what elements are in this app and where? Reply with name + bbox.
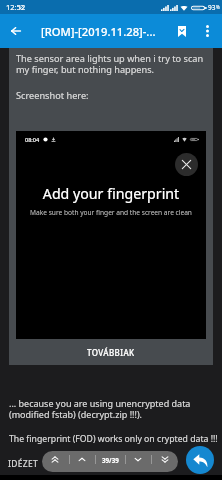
button[interactable]: Bookmark xyxy=(170,14,194,48)
staticText: TOVÁBBIAK xyxy=(87,347,135,358)
staticText: The sensor area lights up when i try to … xyxy=(16,52,206,75)
staticText: Screenshot here: xyxy=(16,89,89,102)
staticText: ... because you are using unencrypted da… xyxy=(9,397,191,421)
staticText: Make sure both your finger and the scree… xyxy=(16,208,206,217)
staticText: Add your fingerprint xyxy=(16,184,206,203)
button[interactable]: Next quote xyxy=(126,451,150,472)
button[interactable]: IDÉZET xyxy=(8,458,39,470)
staticText: 39/39 xyxy=(102,456,119,464)
staticText: The fingerprint (FOD) works only on cryp… xyxy=(9,433,218,445)
button[interactable]: Previous quote xyxy=(70,451,94,472)
button[interactable]: Last quote xyxy=(152,451,178,472)
button[interactable]: Reply xyxy=(186,446,214,474)
staticText: 12:52 xyxy=(6,2,26,12)
button[interactable]: Close xyxy=(175,153,198,176)
button[interactable]: Navigate up xyxy=(0,14,31,48)
button[interactable]: First quote xyxy=(42,451,68,472)
button[interactable]: More options xyxy=(196,14,218,48)
button[interactable]: TOVÁBBIAK xyxy=(9,339,213,365)
staticText: % xyxy=(216,4,220,10)
staticText: 08:04 xyxy=(25,136,40,143)
staticText: [ROM]-[2019.11.28]-... xyxy=(41,24,156,39)
staticText: 93 xyxy=(208,3,216,12)
